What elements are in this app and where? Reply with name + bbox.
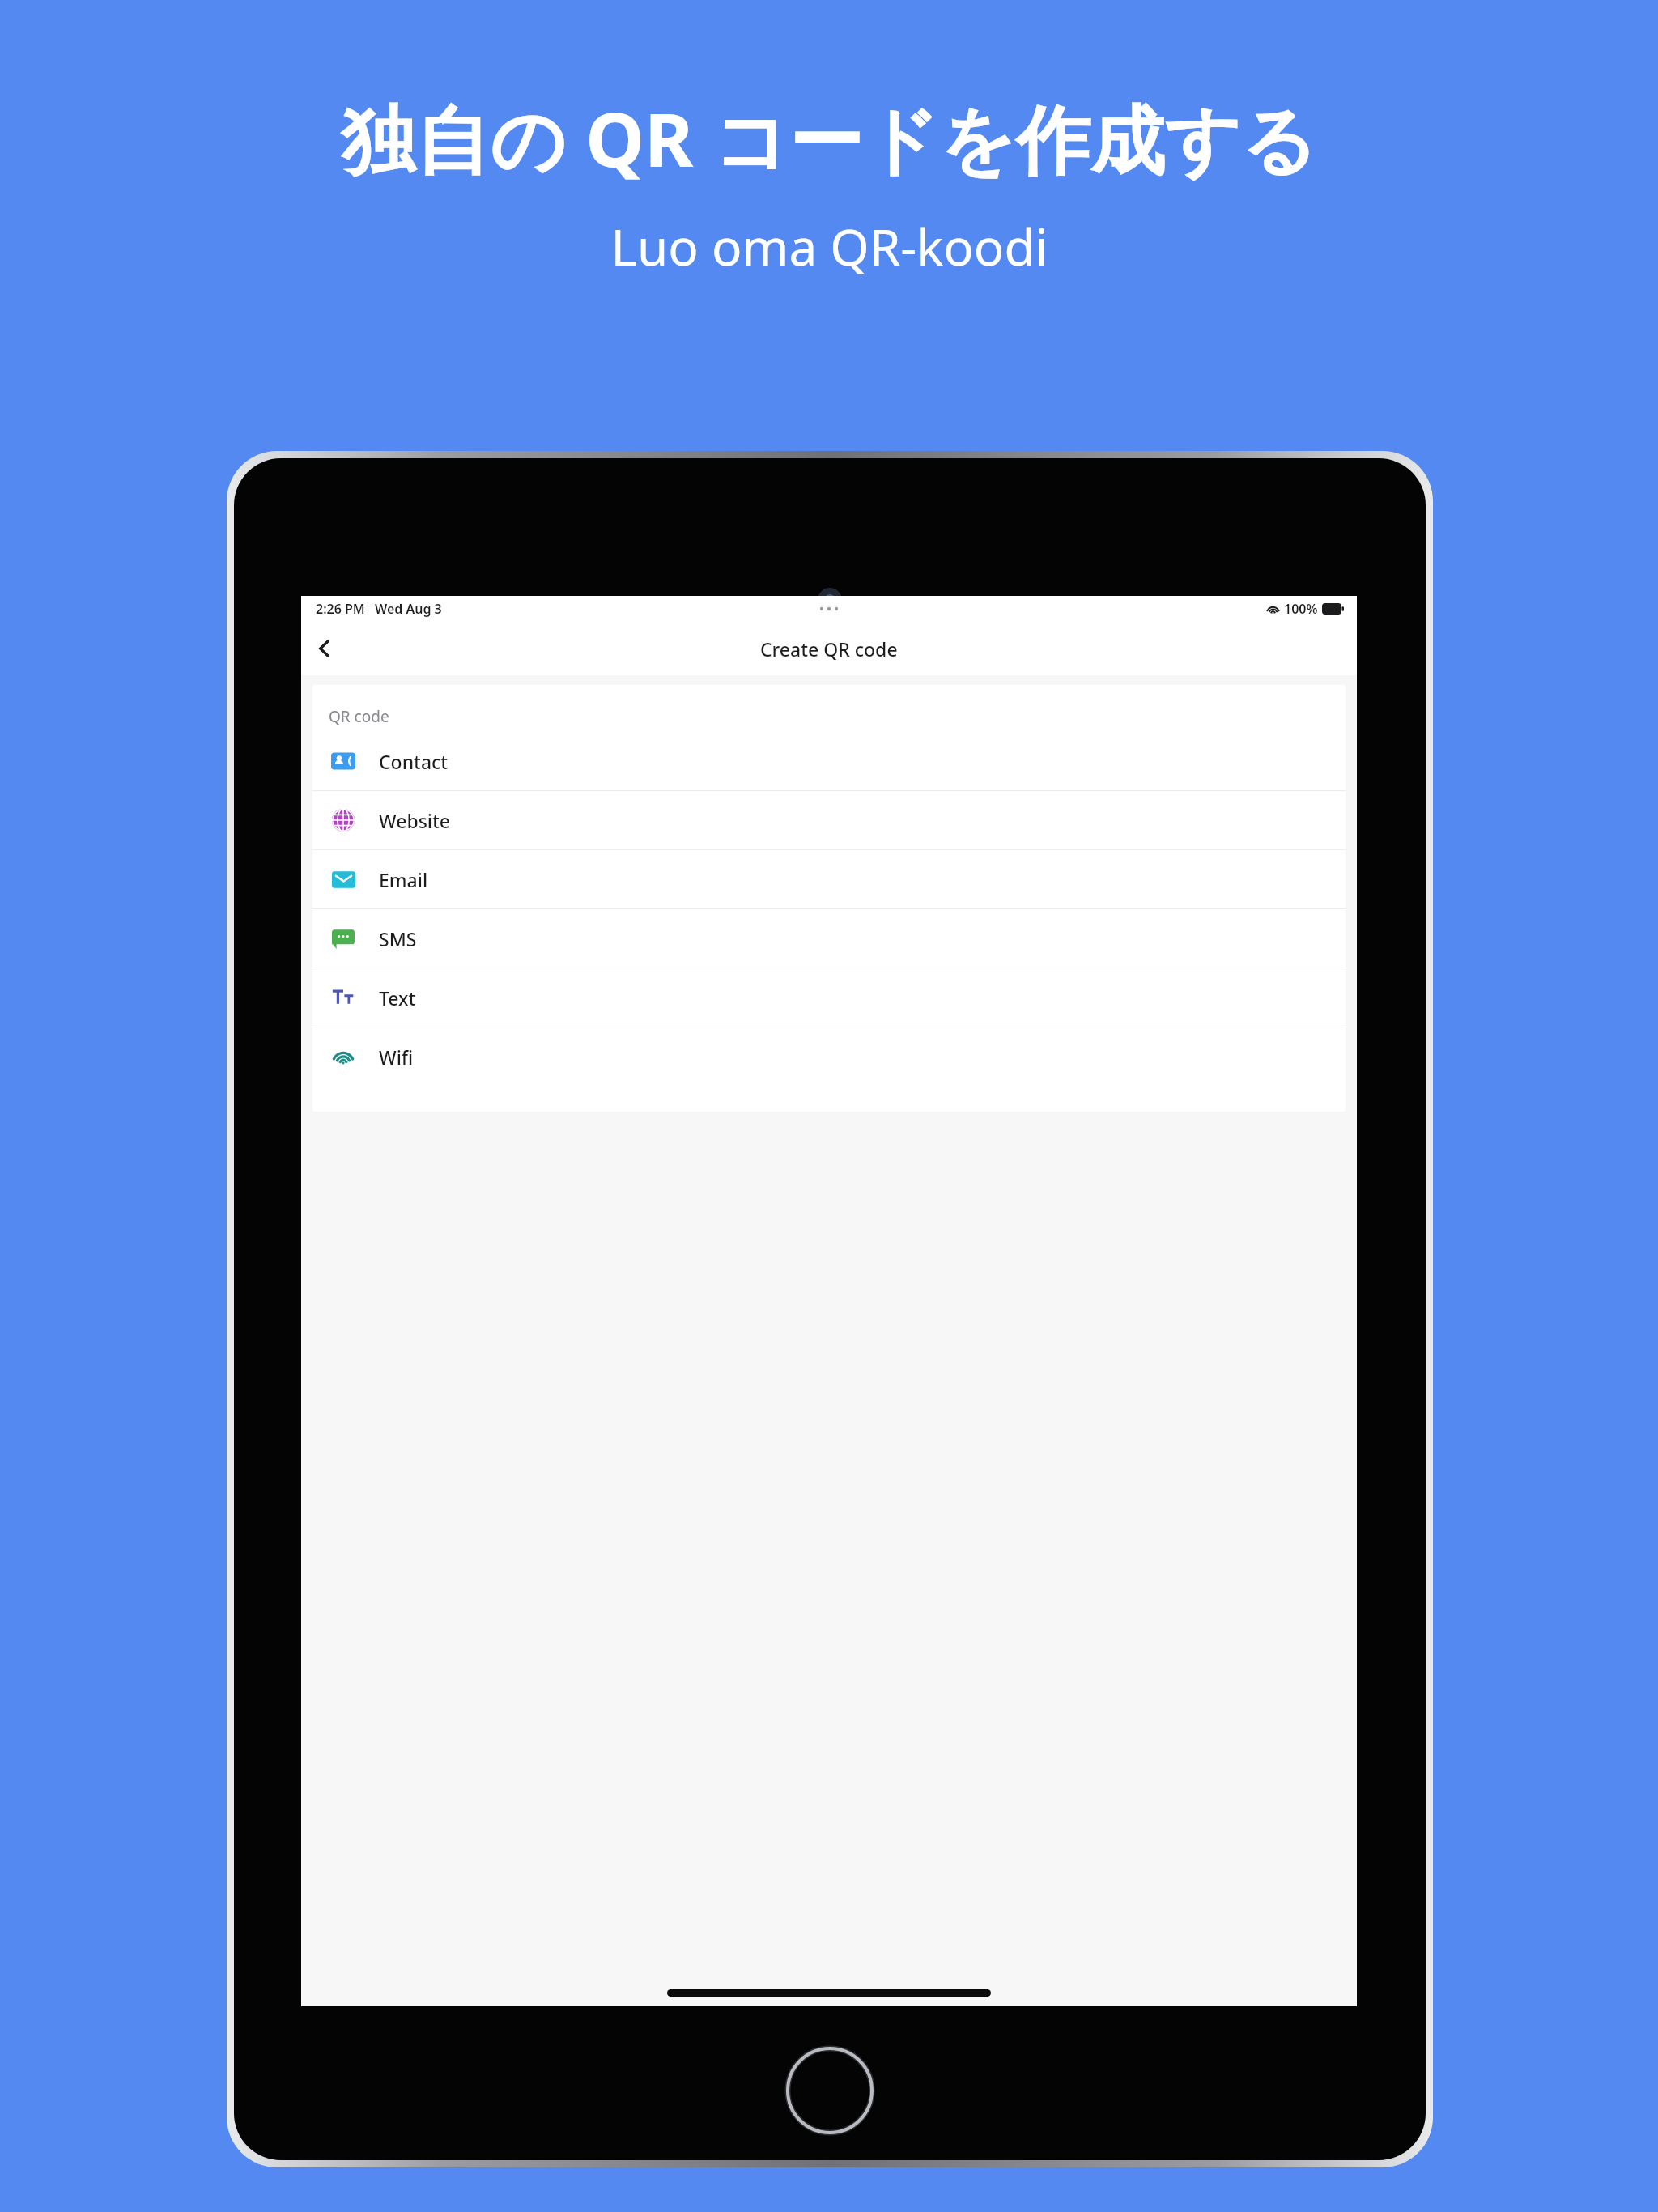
button[interactable]: Back [301,625,348,672]
button[interactable]: Website [312,791,1346,850]
staticText: Email [379,867,428,892]
staticText: 2:26 PM [316,600,365,618]
staticText: QR code [329,706,389,727]
staticText: Wed Aug 3 [375,600,442,618]
staticText: 100% [1284,600,1318,618]
staticText: SMS [379,926,417,951]
button[interactable]: Wifi [312,1027,1346,1086]
button[interactable]: Text [312,968,1346,1027]
button[interactable]: Email [312,850,1346,909]
staticText: Website [379,808,451,833]
staticText: 独自の QR コードを作成する [341,87,1317,189]
staticText: Contact [379,749,449,774]
staticText: Luo oma QR-koodi [610,212,1048,280]
staticText: Wifi [379,1044,414,1070]
button[interactable]: Contact [312,732,1346,791]
staticText: Create QR code [760,636,898,661]
button[interactable]: SMS [312,909,1346,968]
staticText: Text [379,985,416,1010]
